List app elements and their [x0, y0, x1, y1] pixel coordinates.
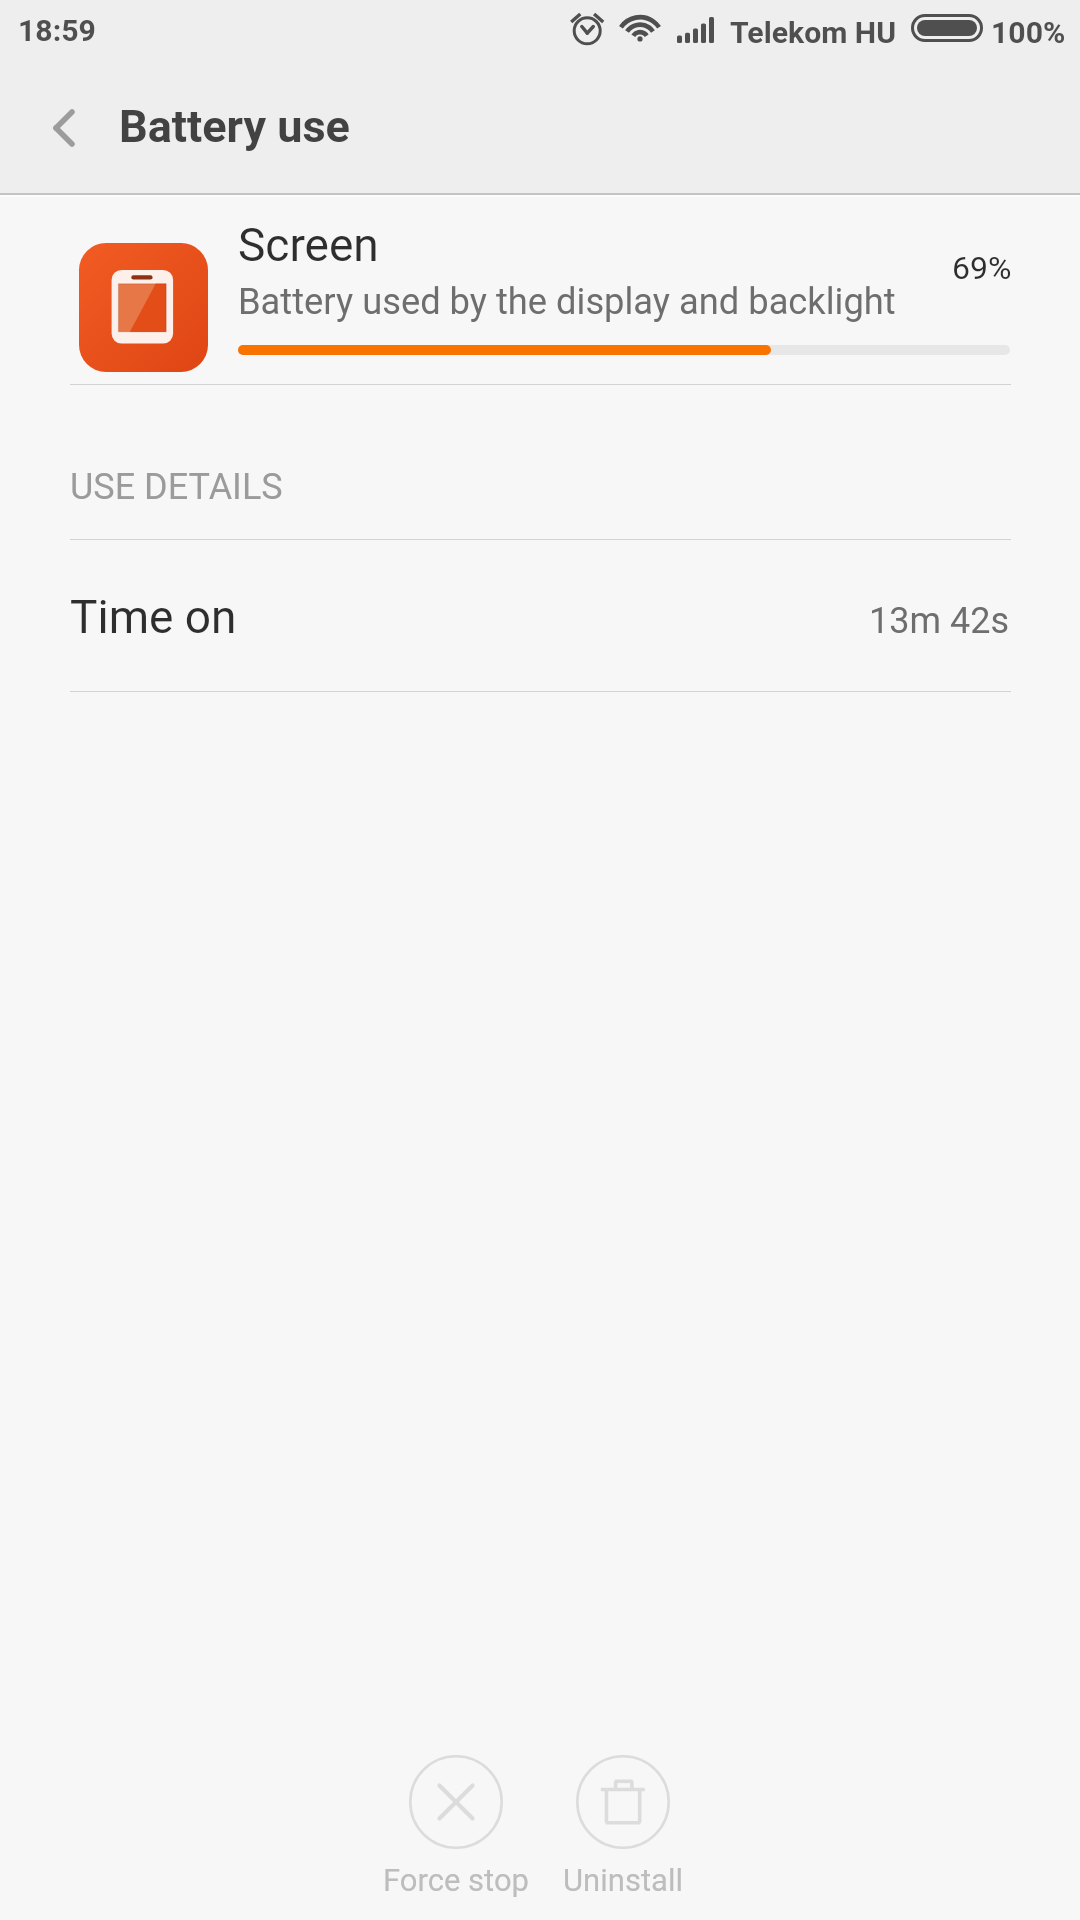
button[interactable]: Back	[24, 88, 104, 168]
staticText: 13m 42s	[869, 600, 1010, 642]
staticText: Battery used by the display and backligh…	[238, 280, 896, 323]
staticText: Screen	[238, 218, 379, 272]
button[interactable]: Time on	[0, 538, 1080, 691]
staticText: Force stop	[383, 1862, 529, 1898]
button[interactable]: Force stop	[366, 1755, 546, 1898]
staticText: 69%	[952, 249, 1012, 287]
staticText: Time on	[70, 590, 237, 644]
button[interactable]: Screen	[0, 195, 1080, 385]
button[interactable]: Uninstall	[533, 1755, 713, 1898]
staticText: 100%	[991, 15, 1066, 50]
staticText: Telekom HU	[730, 15, 897, 50]
staticText: 18:59	[18, 13, 96, 48]
staticText: Battery use	[119, 100, 350, 153]
staticText: USE DETAILS	[70, 466, 283, 508]
staticText: Uninstall	[563, 1862, 683, 1898]
